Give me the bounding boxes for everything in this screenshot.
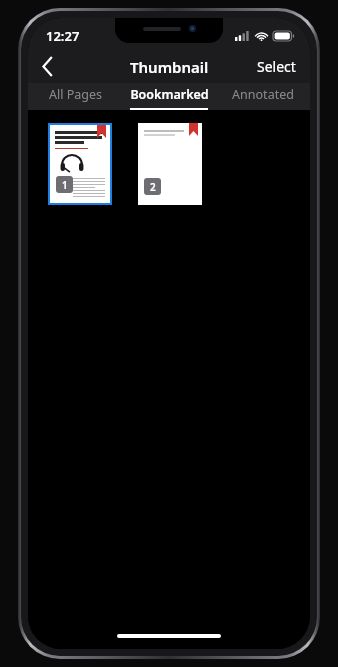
button[interactable]: Back	[28, 50, 68, 83]
staticText: Thumbnail	[130, 57, 209, 77]
button[interactable]: Select	[243, 50, 310, 83]
staticText: 2	[150, 180, 156, 194]
staticText: 1	[62, 178, 68, 192]
button[interactable]: 2	[138, 123, 202, 205]
button[interactable]: 1	[48, 123, 112, 205]
button[interactable]: All Pages	[28, 83, 122, 110]
staticText: All Pages	[49, 86, 102, 103]
staticText: Bookmarked	[130, 86, 209, 103]
staticText: Select	[257, 57, 296, 76]
staticText: Annotated	[232, 86, 294, 103]
button[interactable]: Bookmarked	[122, 83, 216, 110]
staticText: 12:27	[46, 27, 80, 45]
button[interactable]: Annotated	[216, 83, 310, 110]
